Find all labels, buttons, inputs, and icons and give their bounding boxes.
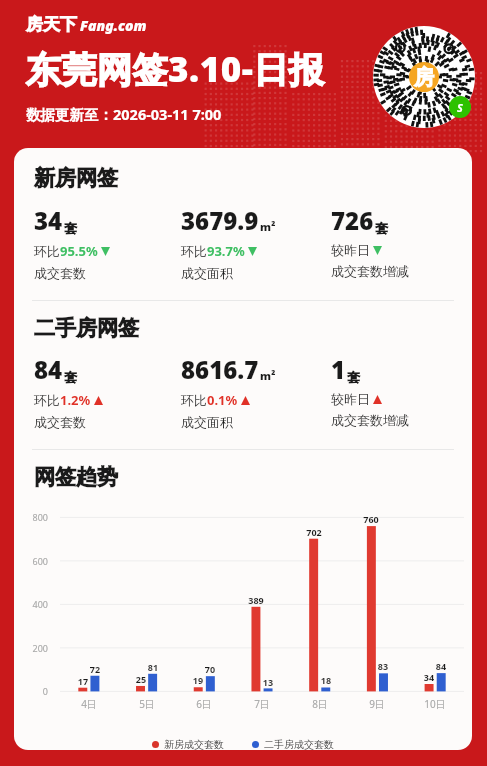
staticText: 10日 [417,697,453,711]
staticText: 成交套数 [34,265,86,281]
staticText: 成交面积 [181,414,233,430]
staticText: 400 [20,598,48,610]
staticText: 702 [300,526,328,538]
staticText: 套 [375,220,388,236]
button[interactable]: 新房成交套数 [148,738,228,750]
staticText: 0.1% [207,391,238,409]
staticText: 760 [357,513,385,525]
staticText: 环比 [34,392,60,408]
staticText: 5日 [129,697,165,711]
staticText: 3679.9 [181,204,259,237]
staticText: 72 [81,663,109,675]
staticText: 25 [127,673,155,685]
staticText: 1 [331,353,346,386]
staticText: 95.5% [60,242,98,260]
staticText: 房天下 [26,14,77,35]
staticText: 34 [415,671,443,683]
button[interactable]: 3679.9 [181,204,331,281]
staticText: 成交套数 [34,414,86,430]
staticText: 成交套数增减 [331,412,409,428]
staticText: 389 [242,594,270,606]
staticText: 34 [34,204,63,237]
staticText: 600 [20,555,48,567]
staticText: 环比 [181,243,207,259]
button[interactable]: 8616.7 [181,353,331,430]
staticText: 9日 [359,697,395,711]
staticText: 成交套数增减 [331,263,409,279]
staticText: 726 [331,204,374,237]
staticText: S [457,100,463,115]
staticText: 800 [20,511,48,523]
button[interactable]: 726 [331,204,462,279]
staticText: 8616.7 [181,353,259,386]
staticText: 较昨日 [331,242,370,258]
staticText: 新房网签 [34,165,118,191]
staticText: 70 [196,663,224,675]
staticText: Fang.com [80,16,147,35]
staticText: 8日 [302,697,338,711]
staticText: 二手房成交套数 [264,738,334,750]
staticText: 网签趋势 [34,464,118,490]
staticText: 84 [427,660,455,672]
staticText: 84 [34,353,63,386]
staticText: 81 [139,661,167,673]
button[interactable]: 34 [34,204,181,281]
staticText: 13 [254,676,282,688]
button[interactable]: 84 [34,353,181,430]
staticText: 成交面积 [181,265,233,281]
staticText: 200 [20,642,48,654]
staticText: 18 [312,674,340,686]
staticText: 房 [414,65,434,90]
staticText: 4日 [71,697,107,711]
staticText: m² [260,368,276,383]
staticText: m² [260,219,276,234]
staticText: 二手房网签 [34,315,139,341]
staticText: 7日 [244,697,280,711]
staticText: 83 [369,660,397,672]
staticText: 环比 [34,243,60,259]
staticText: 1.2% [60,391,91,409]
staticText: 93.7% [207,242,245,260]
staticText: 17 [69,675,97,687]
staticText: 0 [20,685,48,697]
button[interactable]: 扫码二维码 [373,26,475,128]
button[interactable]: 1 [331,353,462,428]
staticText: 较昨日 [331,391,370,407]
staticText: 6日 [186,697,222,711]
staticText: 数据更新至：2026-03-11 7:00 [26,104,222,124]
staticText: 套 [64,220,77,236]
staticText: 环比 [181,392,207,408]
staticText: 套 [64,369,77,385]
button[interactable]: 二手房成交套数 [248,738,338,750]
staticText: 19 [184,674,212,686]
staticText: 新房成交套数 [164,738,224,750]
staticText: 套 [347,369,360,385]
staticText: 东莞网签3.10-日报 [26,45,325,93]
